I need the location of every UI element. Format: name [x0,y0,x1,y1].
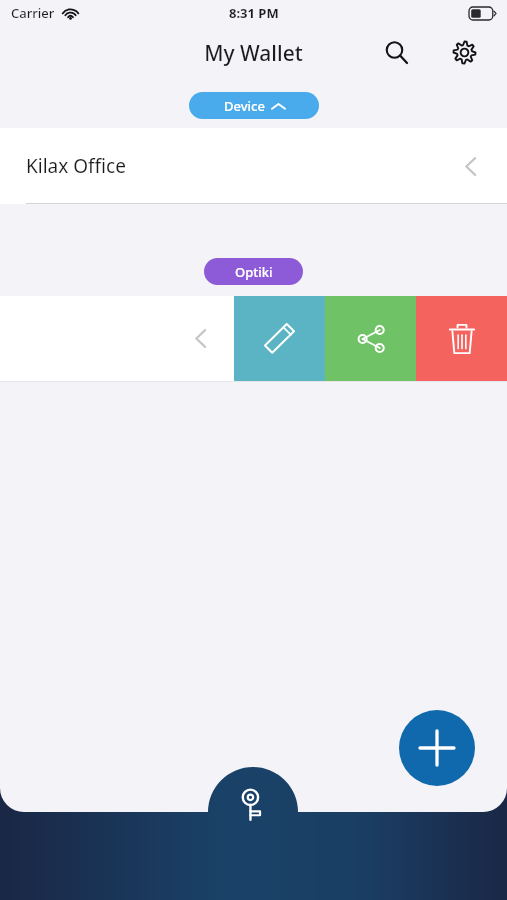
staticText: Optiki [235,263,273,281]
button[interactable]: Settings [442,30,486,74]
button[interactable]: Kilax Office [0,128,507,204]
staticText: Kilax Office [26,153,126,179]
button[interactable]: Delete [416,296,507,381]
staticText: 8:31 PM [229,4,279,22]
button[interactable]: Share [325,296,416,381]
staticText: Carrier [11,4,55,22]
staticText: My Wallet [0,39,507,68]
button[interactable]: Add [399,710,475,786]
button[interactable]: Optiki [204,258,303,285]
staticText: Device [224,97,265,115]
button[interactable]: Key [209,767,297,855]
button[interactable]: Edit [234,296,325,381]
button[interactable] [0,296,507,381]
button[interactable]: Device [189,92,319,119]
button[interactable]: Search [374,30,418,74]
